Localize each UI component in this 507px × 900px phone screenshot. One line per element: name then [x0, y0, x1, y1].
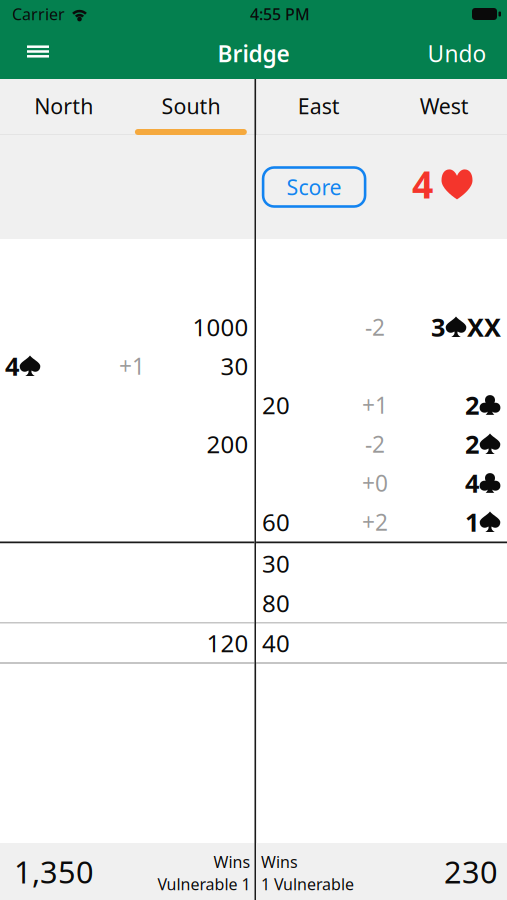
staticText: 4:55 PM [250, 3, 310, 25]
staticText: Bridge [217, 38, 289, 68]
staticText: +1 [119, 351, 145, 381]
staticText: Vulnerable 1 [157, 873, 250, 895]
staticText: -2 [365, 312, 385, 342]
staticText: +2 [362, 507, 388, 537]
button[interactable]: East [256, 79, 382, 135]
staticText: 4 [412, 159, 433, 209]
staticText: 4 [465, 466, 479, 500]
button[interactable]: Undo [426, 31, 488, 75]
staticText: 1 Vulnerable [261, 873, 354, 895]
staticText: 2 [465, 427, 479, 461]
staticText: 30 [262, 548, 290, 579]
staticText: 20 [262, 389, 290, 421]
staticText: 1000 [192, 311, 248, 343]
button[interactable]: South [127, 79, 254, 135]
staticText: 1 [465, 505, 479, 539]
staticText: XX [467, 310, 501, 344]
staticText: 80 [262, 587, 290, 619]
staticText: 120 [206, 627, 248, 659]
staticText: +0 [362, 468, 388, 498]
staticText: Wins [213, 851, 250, 872]
staticText: 1,350 [14, 851, 94, 892]
staticText: -2 [365, 429, 385, 459]
staticText: 200 [206, 428, 248, 460]
button[interactable]: Score [263, 167, 365, 206]
button[interactable]: North [0, 79, 127, 135]
staticText: 2 [465, 388, 479, 422]
staticText: 30 [220, 350, 248, 382]
staticText: Score [287, 173, 342, 201]
button[interactable]: West [382, 79, 507, 135]
staticText: 40 [262, 627, 290, 659]
button[interactable]: Menu [16, 31, 60, 75]
staticText: Wins [261, 851, 298, 872]
staticText: 60 [262, 506, 290, 538]
staticText: Carrier [12, 3, 65, 25]
staticText: 4 [5, 349, 19, 383]
staticText: East [298, 92, 340, 120]
staticText: West [420, 92, 469, 120]
staticText: +1 [362, 390, 388, 420]
staticText: South [161, 92, 220, 120]
staticText: 230 [444, 851, 498, 892]
staticText: North [34, 92, 93, 120]
staticText: 3 [431, 310, 445, 344]
staticText: Undo [427, 38, 486, 68]
